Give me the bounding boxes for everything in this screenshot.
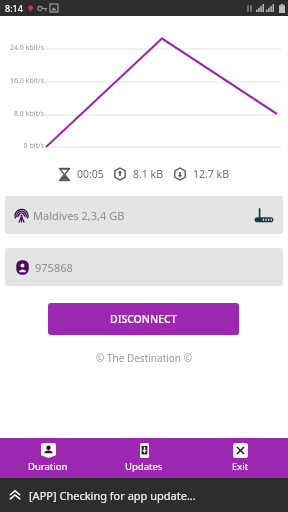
staticText: [APP] Checking for app update... xyxy=(29,488,196,503)
staticText: Duration xyxy=(28,460,68,473)
staticText: 0 bit/s xyxy=(0,141,44,151)
staticText: 24.0 kbit/s xyxy=(0,43,44,53)
staticText: 00:05 xyxy=(77,167,104,181)
staticText: Exit xyxy=(232,460,249,473)
staticText: 8.1 kB xyxy=(133,167,163,181)
staticText: 8:14 xyxy=(5,2,23,14)
staticText: © The Destination © xyxy=(0,351,288,365)
button[interactable]: Exit xyxy=(192,438,288,478)
staticText: Maldives 2,3,4 GB xyxy=(33,208,125,223)
other: Expand notification xyxy=(8,488,22,502)
button[interactable]: DISCONNECT xyxy=(48,303,239,335)
staticText: 975868 xyxy=(35,260,73,275)
button[interactable]: Duration xyxy=(0,438,96,478)
staticText: 16.0 kbit/s xyxy=(0,76,44,86)
button[interactable]: Maldives 2,3,4 GB xyxy=(5,196,283,234)
other: Router xyxy=(254,207,274,224)
staticText: 8.0 kbit/s xyxy=(0,109,44,119)
button[interactable]: 975868 xyxy=(5,248,283,286)
staticText: Updates xyxy=(125,460,163,473)
staticText: 12.7 kB xyxy=(193,167,229,181)
staticText: DISCONNECT xyxy=(110,312,177,326)
button[interactable]: Updates xyxy=(96,438,192,478)
